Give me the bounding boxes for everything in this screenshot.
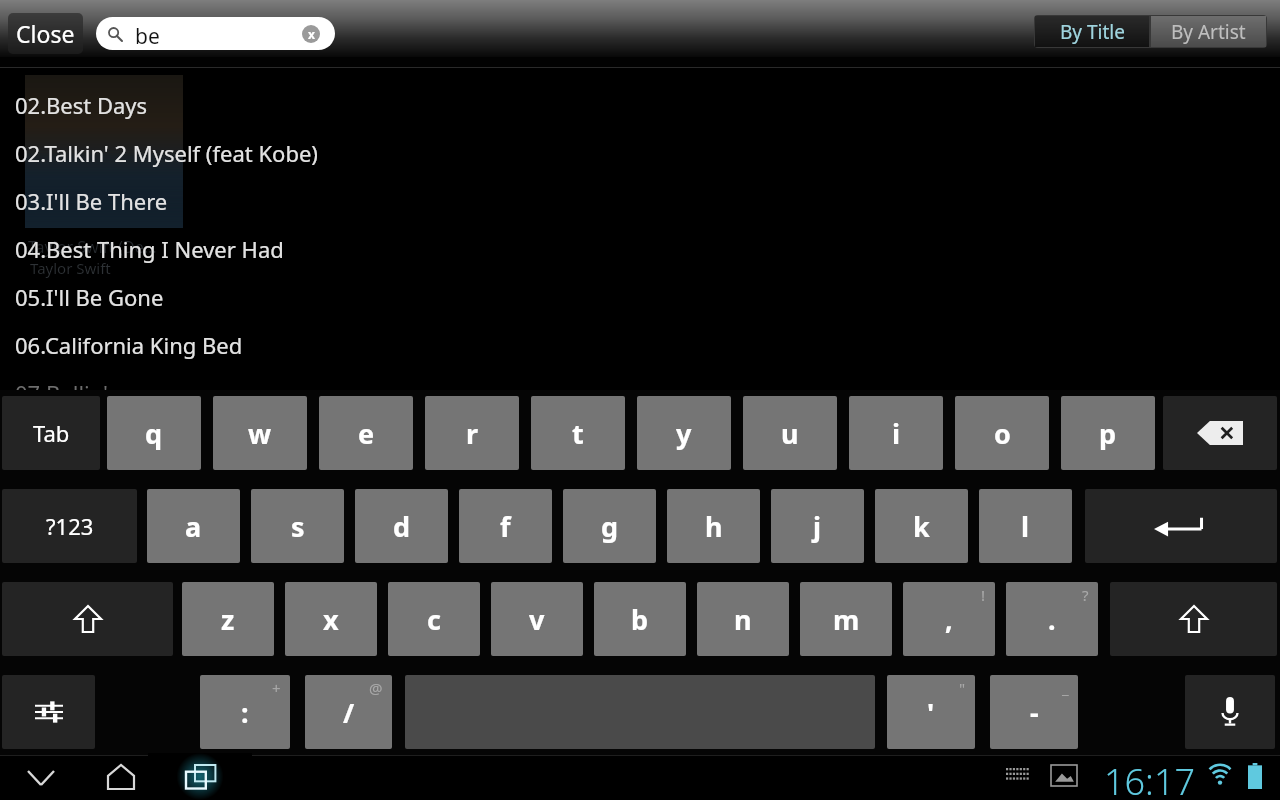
button[interactable]: p <box>1061 396 1155 470</box>
button[interactable]: u <box>743 396 837 470</box>
button[interactable]: , <box>903 582 995 656</box>
button[interactable]: 04.Best Thing I Never Had <box>0 228 1280 276</box>
staticText: g <box>601 508 619 545</box>
button[interactable]: w <box>213 396 307 470</box>
staticText: , <box>945 601 953 638</box>
button[interactable]: m <box>800 582 892 656</box>
button[interactable]: Enter <box>1085 489 1277 563</box>
button[interactable]: c <box>388 582 480 656</box>
staticText: / <box>343 694 355 731</box>
staticText: be <box>135 22 160 50</box>
button[interactable]: d <box>355 489 448 563</box>
button[interactable]: Keyboard settings <box>2 675 95 749</box>
button[interactable]: . <box>1006 582 1098 656</box>
button[interactable]: 02.Best Days <box>0 84 1280 132</box>
button[interactable]: y <box>637 396 731 470</box>
button[interactable]: z <box>182 582 274 656</box>
staticText: Close <box>16 18 75 49</box>
button[interactable]: By Artist <box>1151 16 1266 47</box>
button[interactable]: v <box>491 582 583 656</box>
button[interactable]: ?123 <box>2 489 137 563</box>
button[interactable]: n <box>697 582 789 656</box>
staticText: x <box>308 26 315 42</box>
staticText: v <box>529 601 545 638</box>
staticText: 02.Talkin' 2 Myself (feat Kobe) <box>15 138 318 168</box>
button[interactable]: 07.Ballin' <box>0 378 1280 390</box>
staticText: x <box>323 601 339 638</box>
button[interactable]: 05.I'll Be Gone <box>0 276 1280 324</box>
button[interactable]: o <box>955 396 1049 470</box>
staticText: y <box>676 415 692 452</box>
button[interactable]: s <box>251 489 344 563</box>
staticText: t <box>572 415 584 452</box>
button[interactable]: x <box>285 582 377 656</box>
staticText: " <box>959 678 966 698</box>
button[interactable]: r <box>425 396 519 470</box>
staticText: : <box>241 694 249 731</box>
staticText: w <box>248 415 272 452</box>
staticText: b <box>631 601 649 638</box>
staticText: z <box>221 601 235 638</box>
button[interactable]: Tab <box>2 396 100 470</box>
staticText: ' <box>927 694 935 731</box>
button[interactable]: b <box>594 582 686 656</box>
button[interactable]: Clear search <box>302 25 320 43</box>
staticText: u <box>781 415 799 452</box>
staticText: a <box>185 508 202 545</box>
staticText: 02.Best Days <box>15 90 148 120</box>
button[interactable]: / <box>305 675 392 749</box>
staticText: By Artist <box>1171 19 1246 45</box>
button[interactable]: t <box>531 396 625 470</box>
staticText: e <box>358 415 375 452</box>
button[interactable]: Home <box>98 756 144 798</box>
button[interactable]: l <box>979 489 1072 563</box>
button[interactable]: be <box>96 17 335 50</box>
staticText: ?123 <box>46 511 94 541</box>
staticText: Taylor Swift (De... <box>28 236 157 258</box>
staticText: r <box>466 415 479 452</box>
button[interactable]: 06.California King Bed <box>0 324 1280 372</box>
button[interactable]: - <box>990 675 1078 749</box>
button[interactable]: 03.I'll Be There <box>0 180 1280 228</box>
button[interactable]: Hide keyboard <box>18 758 64 798</box>
staticText: _ <box>1062 678 1069 698</box>
staticText: . <box>1048 601 1056 638</box>
button[interactable]: i <box>849 396 943 470</box>
button[interactable]: Screenshot <box>1051 765 1077 786</box>
staticText: + <box>272 678 281 698</box>
staticText: i <box>892 415 901 452</box>
staticText: Taylor Swift <box>30 258 111 278</box>
button[interactable]: Voice input <box>1185 675 1275 749</box>
staticText: 07.Ballin' <box>15 378 109 390</box>
button[interactable]: k <box>875 489 968 563</box>
button[interactable]: ' <box>887 675 975 749</box>
button[interactable]: Backspace <box>1163 396 1277 470</box>
button[interactable]: a <box>147 489 240 563</box>
staticText: Tab <box>33 418 70 448</box>
button[interactable]: Recent apps <box>178 756 224 798</box>
button[interactable]: Shift <box>1110 582 1277 656</box>
staticText: h <box>705 508 723 545</box>
staticText: d <box>393 508 411 545</box>
button[interactable]: e <box>319 396 413 470</box>
staticText: - <box>1030 694 1039 731</box>
button[interactable]: Shift <box>2 582 173 656</box>
button[interactable]: g <box>563 489 656 563</box>
staticText: 16:17 <box>1104 757 1196 800</box>
button[interactable]: : <box>200 675 290 749</box>
staticText: 03.I'll Be There <box>15 186 168 216</box>
staticText: 04.Best Thing I Never Had <box>15 234 284 264</box>
button[interactable]: By Title <box>1035 16 1149 47</box>
staticText: n <box>734 601 752 638</box>
staticText: s <box>291 508 305 545</box>
button[interactable]: 02.Talkin' 2 Myself (feat Kobe) <box>0 132 1280 180</box>
button[interactable]: j <box>771 489 864 563</box>
button[interactable]: q <box>107 396 201 470</box>
button[interactable]: Close <box>8 13 83 54</box>
staticText: f <box>500 508 511 545</box>
button[interactable]: f <box>459 489 552 563</box>
staticText: m <box>833 601 860 638</box>
staticText: l <box>1021 508 1030 545</box>
button[interactable]: h <box>667 489 760 563</box>
